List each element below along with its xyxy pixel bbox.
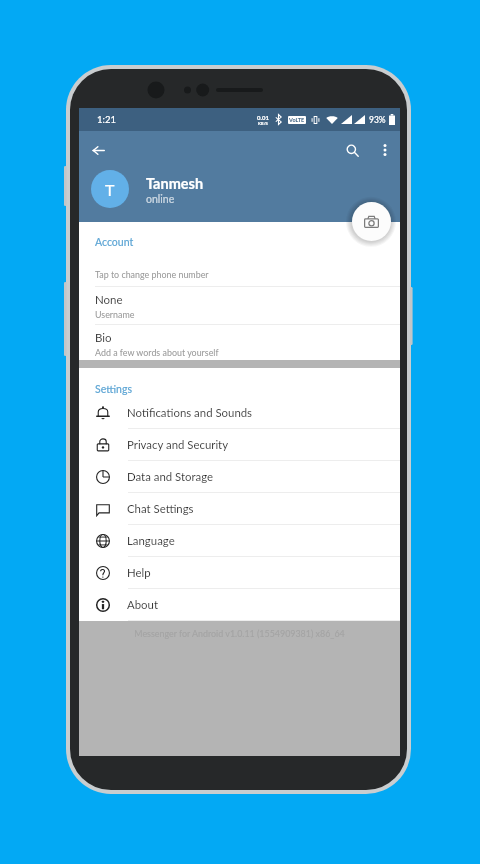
button[interactable]: Bio [79,325,400,360]
button[interactable]: Notifications and Sounds [79,397,400,429]
button[interactable]: Tap to change phone number [79,258,400,286]
button[interactable]: Change profile photo [352,202,391,241]
staticText: 0.01 [257,114,269,121]
staticText: Help [127,566,151,580]
staticText: Language [127,534,175,548]
staticText: Username [95,309,135,320]
button[interactable]: Privacy and Security [79,429,400,461]
staticText: Privacy and Security [127,438,229,452]
staticText: Settings [95,383,132,396]
button[interactable]: Back [84,136,112,164]
staticText: Bio [95,331,112,345]
staticText: Tanmesh [146,175,204,192]
button[interactable]: Chat Settings [79,493,400,525]
staticText: VoLTE [289,117,305,124]
staticText: About [127,598,158,612]
button[interactable]: Search [338,136,366,164]
staticText: None [95,293,123,307]
staticText: Data and Storage [127,470,214,484]
button[interactable]: Help [79,557,400,589]
staticText: online [146,193,175,206]
staticText: Account [95,236,134,249]
staticText: KB/S [258,121,268,126]
button[interactable]: Data and Storage [79,461,400,493]
button[interactable]: More options [371,136,399,164]
staticText: Add a few words about yourself [95,347,219,358]
staticText: Chat Settings [127,502,194,516]
staticText: Messenger for Android v1.0.11 (155490938… [79,628,400,639]
staticText: Tap to change phone number [95,269,209,280]
staticText: 1:21 [97,114,116,125]
staticText: T [105,180,115,199]
button[interactable]: Language [79,525,400,557]
staticText: Notifications and Sounds [127,406,253,420]
button[interactable]: None [79,287,400,324]
staticText: 93% [369,115,386,125]
button[interactable]: About [79,589,400,621]
